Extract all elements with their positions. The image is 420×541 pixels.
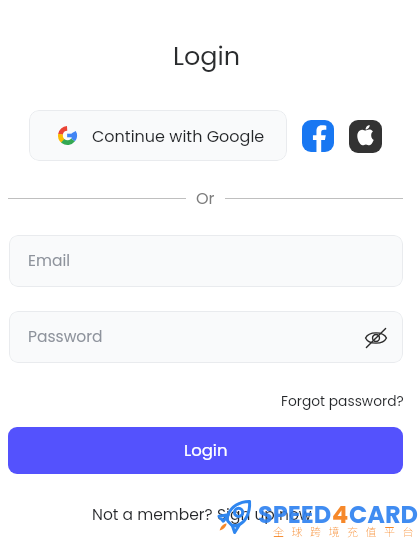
button[interactable]: Sign up now <box>217 504 312 526</box>
staticText: Login <box>184 439 228 462</box>
staticText: 4 <box>332 498 349 532</box>
button[interactable]: Login <box>8 427 403 474</box>
staticText: Login <box>173 38 241 74</box>
button[interactable]: Continue with Apple <box>349 120 382 153</box>
button[interactable]: Password <box>9 311 403 363</box>
button[interactable]: Show password <box>362 324 390 352</box>
staticText: Continue with Google <box>92 125 265 147</box>
staticText: Not a member? <box>92 504 217 526</box>
button[interactable]: Forgot password? <box>281 392 404 411</box>
staticText: 全球跨境充值平台 <box>273 523 420 539</box>
staticText: Password <box>28 326 103 348</box>
button[interactable]: Email <box>9 235 403 287</box>
staticText: Or <box>196 187 215 209</box>
staticText: Email <box>28 250 71 272</box>
staticText: CARD <box>349 498 419 532</box>
staticText: SPEED <box>258 498 332 532</box>
button[interactable]: Continue with Facebook <box>302 120 334 152</box>
button[interactable]: Continue with Google <box>29 110 287 161</box>
